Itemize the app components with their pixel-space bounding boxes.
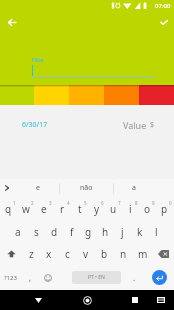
staticText: 7: [118, 200, 121, 206]
staticText: 9: [152, 200, 155, 206]
staticText: p: [161, 202, 168, 216]
button[interactable]: u: [106, 197, 123, 220]
staticText: $: [150, 120, 155, 130]
staticText: k: [137, 225, 143, 239]
staticText: Value: [123, 119, 147, 131]
staticText: d: [51, 225, 58, 239]
staticText: o: [144, 202, 151, 216]
button[interactable]: ,: [21, 265, 39, 290]
staticText: g: [85, 225, 92, 239]
staticText: 0: [169, 200, 172, 206]
staticText: 4: [67, 200, 70, 206]
staticText: PT • EN: [88, 274, 105, 281]
staticText: 6: [101, 200, 104, 206]
staticText: Title: [31, 56, 44, 64]
button[interactable]: More suggestions: [0, 179, 14, 197]
button[interactable]: Save: [155, 13, 173, 31]
staticText: 1: [13, 200, 16, 206]
button[interactable]: Value: [118, 116, 174, 134]
button[interactable]: n: [114, 243, 133, 265]
button[interactable]: m: [133, 243, 152, 265]
staticText: e: [41, 202, 47, 216]
staticText: y: [94, 202, 100, 216]
button[interactable]: f: [63, 220, 80, 243]
staticText: s: [34, 225, 39, 239]
button[interactable]: y: [89, 197, 106, 220]
button[interactable]: q: [0, 197, 18, 220]
staticText: ?123: [4, 274, 17, 282]
button[interactable]: r: [54, 197, 72, 220]
button[interactable]: .: [125, 265, 143, 290]
staticText: h: [102, 225, 109, 239]
button[interactable]: l: [148, 220, 165, 243]
button[interactable]: s: [27, 220, 45, 243]
staticText: 2: [31, 200, 34, 206]
button[interactable]: z: [22, 243, 40, 265]
staticText: x: [46, 247, 52, 261]
button[interactable]: a: [9, 220, 27, 243]
staticText: f: [70, 225, 74, 239]
button[interactable]: [0, 85, 34, 105]
staticText: r: [60, 202, 65, 216]
button[interactable]: Emoji: [39, 265, 56, 290]
button[interactable]: Switch keyboard: [149, 290, 173, 310]
button[interactable]: [139, 85, 174, 105]
button[interactable]: Shift: [0, 243, 22, 265]
staticText: 07:00: [155, 2, 171, 10]
staticText: w: [22, 202, 30, 216]
button[interactable]: x: [40, 243, 58, 265]
staticText: v: [83, 247, 89, 261]
button[interactable]: Hide keyboard: [20, 290, 56, 310]
staticText: a: [15, 225, 21, 239]
button[interactable]: Recents: [121, 290, 149, 310]
staticText: l: [155, 225, 158, 239]
button[interactable]: b: [95, 243, 114, 265]
staticText: c: [65, 247, 70, 261]
button[interactable]: p: [157, 197, 174, 220]
staticText: b: [101, 247, 108, 261]
staticText: t: [78, 202, 82, 216]
button[interactable]: i: [123, 197, 140, 220]
button[interactable]: Backspace: [152, 243, 174, 265]
staticText: q: [5, 202, 12, 216]
staticText: u: [110, 202, 117, 216]
staticText: a: [132, 183, 136, 193]
button[interactable]: e: [16, 179, 59, 197]
button[interactable]: [69, 85, 104, 105]
staticText: .: [133, 272, 136, 283]
button[interactable]: [104, 85, 139, 105]
staticText: n: [120, 247, 127, 261]
staticText: 5: [84, 200, 87, 206]
staticText: m: [138, 247, 148, 261]
button[interactable]: não: [60, 179, 112, 197]
staticText: não: [80, 183, 93, 193]
button[interactable]: t: [72, 197, 89, 220]
button[interactable]: ?123: [0, 265, 21, 290]
button[interactable]: e: [36, 197, 54, 220]
button[interactable]: [34, 85, 69, 105]
button[interactable]: o: [140, 197, 157, 220]
button[interactable]: Home: [69, 290, 105, 310]
button[interactable]: c: [58, 243, 76, 265]
button[interactable]: Back: [3, 13, 21, 31]
button[interactable]: Enter: [147, 265, 171, 290]
staticText: z: [29, 247, 34, 261]
button[interactable]: d: [45, 220, 63, 243]
staticText: j: [121, 225, 124, 239]
staticText: ,: [29, 272, 32, 283]
button[interactable]: PT • EN: [72, 271, 121, 284]
staticText: i: [129, 202, 132, 216]
button[interactable]: h: [97, 220, 114, 243]
staticText: 6/30/17: [22, 120, 48, 130]
button[interactable]: g: [80, 220, 97, 243]
button[interactable]: w: [18, 197, 36, 220]
staticText: 3: [49, 200, 52, 206]
staticText: e: [36, 183, 40, 193]
button[interactable]: j: [114, 220, 131, 243]
button[interactable]: 6/30/17: [14, 116, 56, 134]
button[interactable]: v: [76, 243, 95, 265]
staticText: 8: [135, 200, 138, 206]
button[interactable]: a: [114, 179, 154, 197]
button[interactable]: k: [131, 220, 148, 243]
